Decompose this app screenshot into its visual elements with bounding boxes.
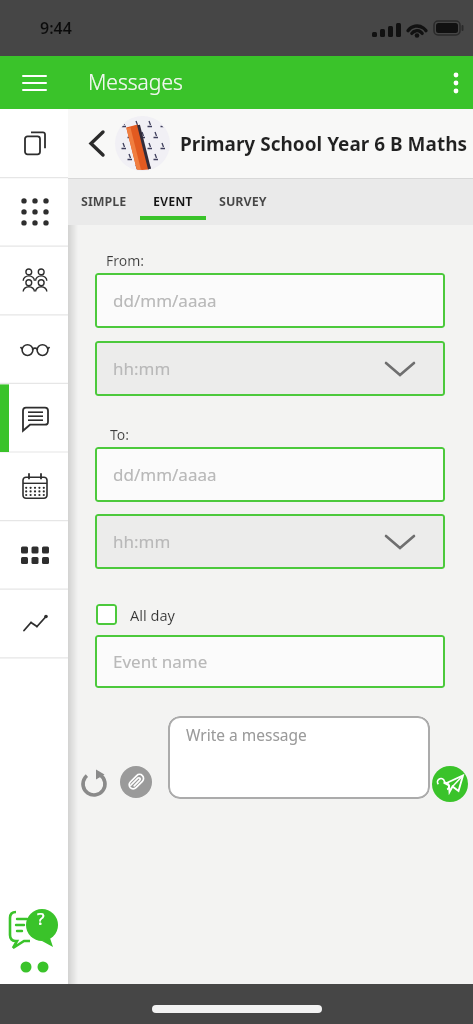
button[interactable] xyxy=(120,766,152,798)
button[interactable]: SURVEY xyxy=(212,178,274,225)
button[interactable]: dd/mm/aaaa xyxy=(95,273,445,328)
staticText: SIMPLE xyxy=(81,193,127,210)
staticText: Write a message xyxy=(186,724,307,745)
staticText: dd/mm/aaaa xyxy=(113,463,217,486)
button[interactable] xyxy=(0,316,68,385)
staticText: ? xyxy=(37,907,45,930)
staticText: EVENT xyxy=(153,193,193,210)
staticText: Event name xyxy=(113,650,208,673)
button[interactable]: SIMPLE xyxy=(74,178,134,225)
button[interactable] xyxy=(0,523,68,592)
staticText: Primary School Year 6 B Maths xyxy=(180,131,473,157)
button[interactable] xyxy=(0,109,68,178)
staticText: To: xyxy=(110,425,130,444)
staticText: hh:mm xyxy=(113,357,171,380)
button[interactable] xyxy=(432,766,468,802)
button[interactable]: Event name xyxy=(95,635,445,688)
button[interactable] xyxy=(0,247,68,316)
staticText: All day xyxy=(130,605,175,625)
button[interactable] xyxy=(0,385,68,454)
staticText: hh:mm xyxy=(113,530,171,553)
button[interactable]: All day xyxy=(95,604,175,625)
button[interactable] xyxy=(15,70,55,96)
button[interactable]: Write a message xyxy=(168,716,430,799)
button[interactable] xyxy=(0,178,68,247)
button[interactable]: hh:mm xyxy=(95,341,445,396)
button[interactable] xyxy=(84,130,112,157)
button[interactable]: hh:mm xyxy=(95,514,445,569)
button[interactable] xyxy=(444,66,468,100)
staticText: SURVEY xyxy=(219,193,267,210)
staticText: Messages xyxy=(88,68,183,97)
button[interactable]: dd/mm/aaaa xyxy=(95,447,445,502)
button[interactable] xyxy=(80,769,108,797)
staticText: dd/mm/aaaa xyxy=(113,289,217,312)
staticText: 9:44 xyxy=(40,17,72,39)
button[interactable]: EVENT xyxy=(140,178,206,225)
button[interactable] xyxy=(0,454,68,523)
staticText: From: xyxy=(106,251,145,270)
button[interactable] xyxy=(0,592,68,661)
